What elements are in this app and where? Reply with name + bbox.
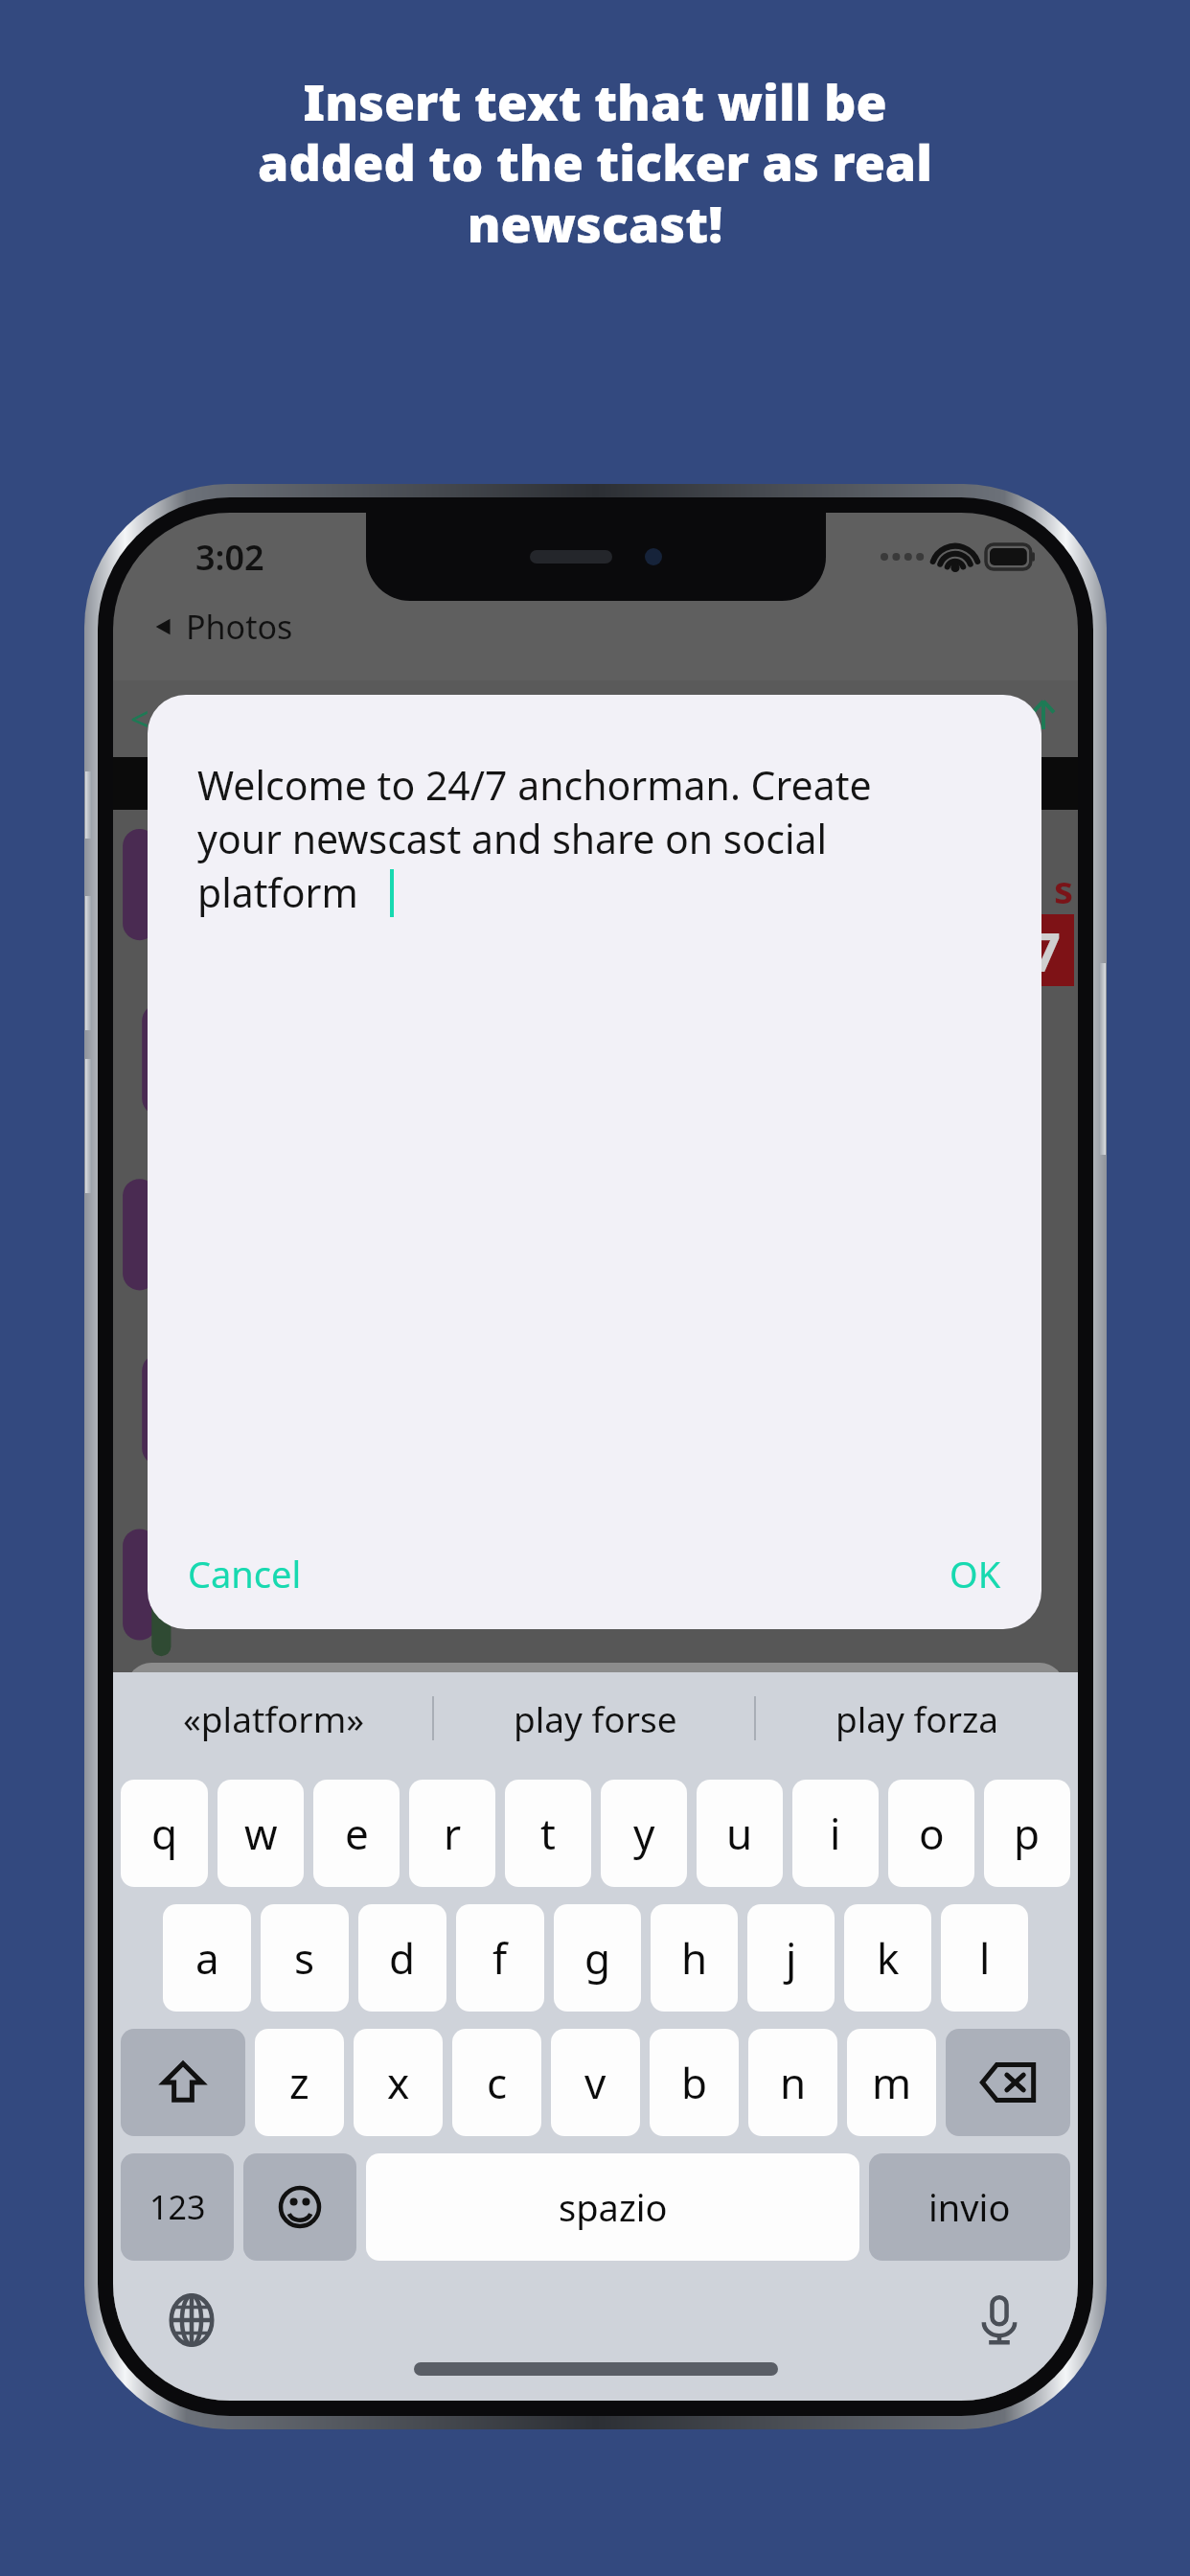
- staticText: h: [681, 1929, 708, 1987]
- staticText: i: [830, 1805, 841, 1862]
- button[interactable]: h: [651, 1904, 738, 2012]
- button[interactable]: w: [217, 1780, 304, 1887]
- button[interactable]: i: [792, 1780, 879, 1887]
- button[interactable]: x: [354, 2029, 443, 2136]
- staticText: l: [979, 1929, 991, 1987]
- staticText: e: [345, 1805, 369, 1862]
- staticText: Cancel: [188, 1549, 302, 1598]
- staticText: k: [877, 1929, 900, 1987]
- button[interactable]: Emoji: [243, 2153, 356, 2261]
- button[interactable]: j: [747, 1904, 835, 2012]
- staticText: f: [492, 1929, 508, 1987]
- button[interactable]: n: [748, 2029, 837, 2136]
- staticText: 123: [149, 2185, 206, 2229]
- staticText: m: [872, 2054, 912, 2111]
- button[interactable]: s: [261, 1904, 349, 2012]
- staticText: c: [487, 2054, 508, 2111]
- button[interactable]: o: [888, 1780, 974, 1887]
- button[interactable]: «platform»: [113, 1672, 434, 1764]
- staticText: q: [151, 1805, 178, 1862]
- staticText: play forza: [835, 1694, 999, 1742]
- staticText: r: [444, 1805, 462, 1862]
- staticText: Add new text: [251, 1680, 487, 1732]
- button[interactable]: Dictation: [965, 2286, 1034, 2355]
- button[interactable]: p: [984, 1780, 1070, 1887]
- staticText: «platform»: [183, 1694, 365, 1742]
- button[interactable]: m: [847, 2029, 936, 2136]
- button[interactable]: OK: [936, 1537, 1015, 1610]
- button[interactable]: g: [554, 1904, 641, 2012]
- button[interactable]: Add new text: [126, 1663, 1064, 1749]
- button[interactable]: d: [358, 1904, 446, 2012]
- staticText: u: [726, 1805, 753, 1862]
- staticText: j: [786, 1929, 797, 1987]
- button[interactable]: Backspace: [946, 2029, 1070, 2136]
- staticText: t: [540, 1805, 556, 1862]
- staticText: spazio: [559, 2182, 668, 2232]
- button[interactable]: 123: [121, 2153, 234, 2261]
- staticText: g: [584, 1929, 611, 1987]
- staticText: 3:02: [195, 534, 881, 581]
- staticText: a: [195, 1929, 219, 1987]
- button[interactable]: z: [255, 2029, 344, 2136]
- staticText: z: [289, 2054, 309, 2111]
- staticText: o: [919, 1805, 945, 1862]
- staticText: b: [681, 2054, 708, 2111]
- staticText: y: [633, 1805, 655, 1862]
- button[interactable]: spazio: [366, 2153, 859, 2261]
- button[interactable]: Cancel: [174, 1537, 315, 1610]
- button[interactable]: y: [601, 1780, 687, 1887]
- button[interactable]: play forse: [434, 1672, 756, 1764]
- staticText: Welcome to 24/7 anchorman. Create your n…: [197, 758, 872, 919]
- button[interactable]: v: [551, 2029, 640, 2136]
- staticText: s: [1054, 862, 1074, 914]
- button[interactable]: c: [452, 2029, 541, 2136]
- button[interactable]: k: [844, 1904, 931, 2012]
- button[interactable]: b: [650, 2029, 739, 2136]
- button[interactable]: a: [163, 1904, 251, 2012]
- staticText: s: [294, 1929, 315, 1987]
- staticText: v: [584, 2054, 606, 2111]
- staticText: play forse: [514, 1694, 677, 1742]
- button[interactable]: play forza: [756, 1672, 1078, 1764]
- staticText: x: [387, 2054, 410, 2111]
- button[interactable]: Back to Photos: [151, 605, 293, 649]
- button[interactable]: r: [409, 1780, 495, 1887]
- button[interactable]: invio: [869, 2153, 1070, 2261]
- button[interactable]: Change keyboard language: [157, 2286, 226, 2355]
- button[interactable]: u: [697, 1780, 783, 1887]
- button[interactable]: t: [505, 1780, 591, 1887]
- button[interactable]: q: [121, 1780, 208, 1887]
- staticText: n: [780, 2054, 807, 2111]
- button[interactable]: Shift: [121, 2029, 245, 2136]
- button[interactable]: f: [456, 1904, 544, 2012]
- staticText: invio: [928, 2182, 1011, 2232]
- staticText: p: [1014, 1805, 1041, 1862]
- staticText: OK: [950, 1549, 1001, 1598]
- staticText: Photos: [186, 605, 293, 649]
- staticText: w: [244, 1805, 278, 1862]
- button[interactable]: e: [313, 1780, 400, 1887]
- staticText: d: [389, 1929, 416, 1987]
- staticText: 7: [1030, 914, 1062, 986]
- button[interactable]: l: [941, 1904, 1028, 2012]
- staticText: Insert text that will be added to the ti…: [258, 67, 932, 257]
- staticText: < Back: [130, 697, 232, 741]
